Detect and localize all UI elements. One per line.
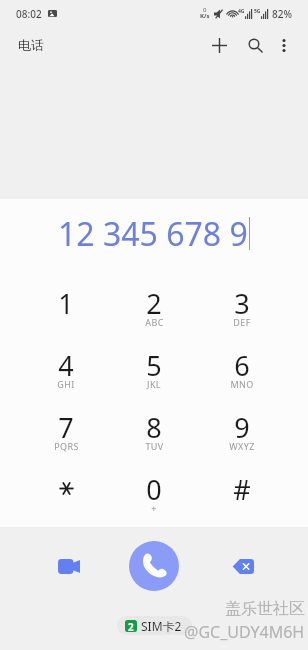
button[interactable]: 2 (117, 616, 192, 635)
button[interactable]: 7 (22, 395, 110, 457)
staticText: 2 (128, 620, 134, 632)
button[interactable]: 6 (198, 333, 286, 395)
staticText: K/s (200, 12, 210, 20)
staticText: 5 (146, 347, 162, 377)
button[interactable]: # (198, 457, 286, 519)
button[interactable]: 9 (198, 395, 286, 457)
staticText: 7 (58, 409, 74, 439)
staticText: GHI (57, 378, 75, 390)
button[interactable]: 2 (110, 271, 198, 333)
staticText: + (151, 502, 157, 514)
staticText: 0 (203, 6, 207, 14)
button[interactable]: 8 (110, 395, 198, 457)
button[interactable]: 3 (198, 271, 286, 333)
staticText: @GC_UDY4M6H (184, 621, 305, 643)
button[interactable]: Add contact (202, 28, 236, 62)
button[interactable] (22, 457, 110, 519)
staticText: TUV (145, 440, 164, 452)
staticText: 4 (58, 347, 74, 377)
button[interactable]: 0 (110, 457, 198, 519)
staticText: # (233, 471, 251, 501)
staticText: 12 345 678 9 (58, 212, 248, 256)
staticText: WXYZ (229, 440, 255, 452)
staticText: 9 (234, 409, 250, 439)
staticText: 2 (146, 285, 162, 315)
staticText: SIM卡2 (141, 618, 182, 634)
staticText: 8 (146, 409, 162, 439)
button[interactable]: Backspace (220, 544, 265, 589)
staticText: 3 (234, 285, 250, 315)
button[interactable]: Call (129, 541, 179, 591)
button[interactable]: More options (276, 28, 292, 62)
staticText: 5G (254, 8, 261, 15)
staticText: 电话 (18, 37, 44, 53)
staticText: ABC (145, 316, 164, 328)
staticText: 盖乐世社区 (225, 599, 305, 619)
staticText: 6 (234, 347, 250, 377)
staticText: JKL (147, 378, 161, 390)
staticText: MNO (230, 378, 254, 390)
button[interactable]: 4 (22, 333, 110, 395)
staticText: 4G (238, 8, 245, 15)
staticText: 82% (272, 7, 292, 21)
button[interactable]: Video call (46, 544, 91, 589)
staticText: 0 (146, 471, 162, 501)
staticText: 1 (58, 285, 74, 315)
button[interactable]: Search (238, 28, 272, 62)
staticText: 08:02 (16, 7, 42, 21)
staticText: PQRS (54, 440, 79, 452)
staticText: DEF (233, 316, 251, 328)
button[interactable]: 5 (110, 333, 198, 395)
button[interactable]: 1 (22, 271, 110, 333)
